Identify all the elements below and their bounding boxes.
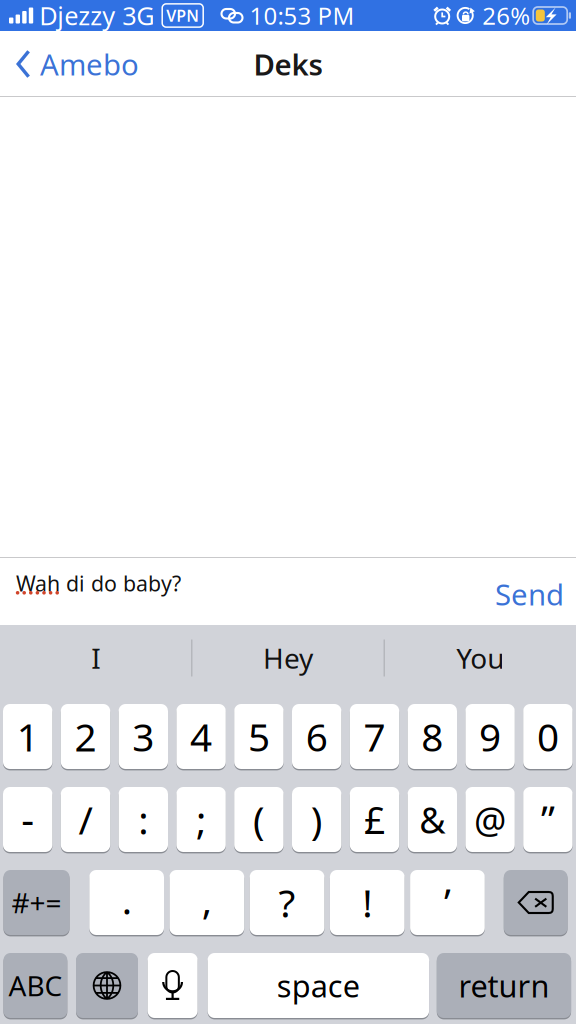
button[interactable]: ; (176, 787, 226, 852)
button[interactable]: 0 (523, 704, 573, 769)
button[interactable]: Delete (504, 870, 567, 935)
staticText: You (456, 639, 504, 677)
button[interactable]: space (208, 953, 429, 1018)
staticText: space (277, 965, 360, 1006)
button[interactable]: 7 (350, 704, 399, 769)
button[interactable]: , (169, 870, 244, 935)
staticText: VPN (166, 5, 199, 26)
staticText: 9 (479, 711, 501, 762)
button[interactable]: ! (330, 870, 405, 935)
staticText: 0 (537, 711, 559, 762)
staticText: - (21, 792, 34, 845)
button[interactable]: £ (350, 787, 399, 852)
staticText: 7 (363, 711, 385, 762)
staticText: ) (311, 794, 323, 845)
button[interactable]: 4 (176, 704, 226, 769)
button[interactable]: Hey (192, 625, 384, 691)
button[interactable]: ( (234, 787, 284, 852)
button[interactable]: @ (465, 787, 515, 852)
button[interactable]: 9 (465, 704, 515, 769)
staticText: Hey (263, 639, 313, 677)
staticText: @ (474, 796, 506, 843)
button[interactable]: - (3, 787, 52, 852)
staticText: 10:53 PM (249, 0, 354, 31)
staticText: #+= (11, 884, 61, 921)
staticText: , (202, 874, 212, 925)
staticText: Deks (253, 44, 322, 83)
button[interactable]: ABC (3, 953, 67, 1018)
staticText: : (138, 794, 148, 845)
button[interactable]: return (437, 953, 571, 1018)
staticText: / (78, 794, 92, 845)
button[interactable]: ) (292, 787, 341, 852)
staticText: 5 (248, 711, 270, 762)
button[interactable]: Dictation (148, 953, 198, 1018)
button[interactable]: 3 (119, 704, 168, 769)
button[interactable]: Amebo (0, 31, 149, 97)
button[interactable]: Next keyboard (76, 953, 138, 1018)
staticText: Wah di do baby? (16, 569, 181, 597)
button[interactable]: I (0, 625, 191, 691)
staticText: ’ (444, 876, 451, 927)
staticText: & (419, 796, 445, 843)
button[interactable]: . (89, 870, 164, 935)
staticText: ABC (8, 967, 62, 1004)
staticText: ” (541, 793, 555, 844)
button[interactable]: 1 (3, 704, 52, 769)
button[interactable]: You (385, 625, 576, 691)
staticText: 1 (17, 711, 39, 762)
staticText: ; (196, 794, 206, 845)
staticText: 26% (482, 0, 530, 31)
staticText: 2 (74, 711, 96, 762)
button[interactable]: #+= (3, 870, 69, 935)
button[interactable]: Send (481, 557, 576, 625)
staticText: 3 (132, 711, 154, 762)
staticText: ? (279, 877, 296, 928)
staticText: I (91, 639, 100, 677)
button[interactable]: / (61, 787, 110, 852)
staticText: ! (362, 877, 372, 928)
staticText: £ (364, 795, 385, 844)
staticText: 4 (190, 711, 212, 762)
staticText: Send (495, 574, 564, 613)
button[interactable]: : (119, 787, 168, 852)
button[interactable]: ” (523, 787, 573, 852)
button[interactable]: 8 (408, 704, 457, 769)
staticText: return (458, 965, 549, 1006)
button[interactable]: & (408, 787, 457, 852)
button[interactable]: 6 (292, 704, 341, 769)
staticText: . (122, 874, 132, 925)
button[interactable]: 2 (61, 704, 110, 769)
button[interactable]: 5 (234, 704, 284, 769)
staticText: 8 (421, 711, 443, 762)
staticText: 6 (306, 711, 328, 762)
staticText: Djezzy 3G (39, 0, 154, 32)
staticText: ( (253, 794, 265, 845)
staticText: Amebo (40, 44, 139, 83)
button[interactable]: ’ (410, 870, 485, 935)
button[interactable]: ? (250, 870, 324, 935)
